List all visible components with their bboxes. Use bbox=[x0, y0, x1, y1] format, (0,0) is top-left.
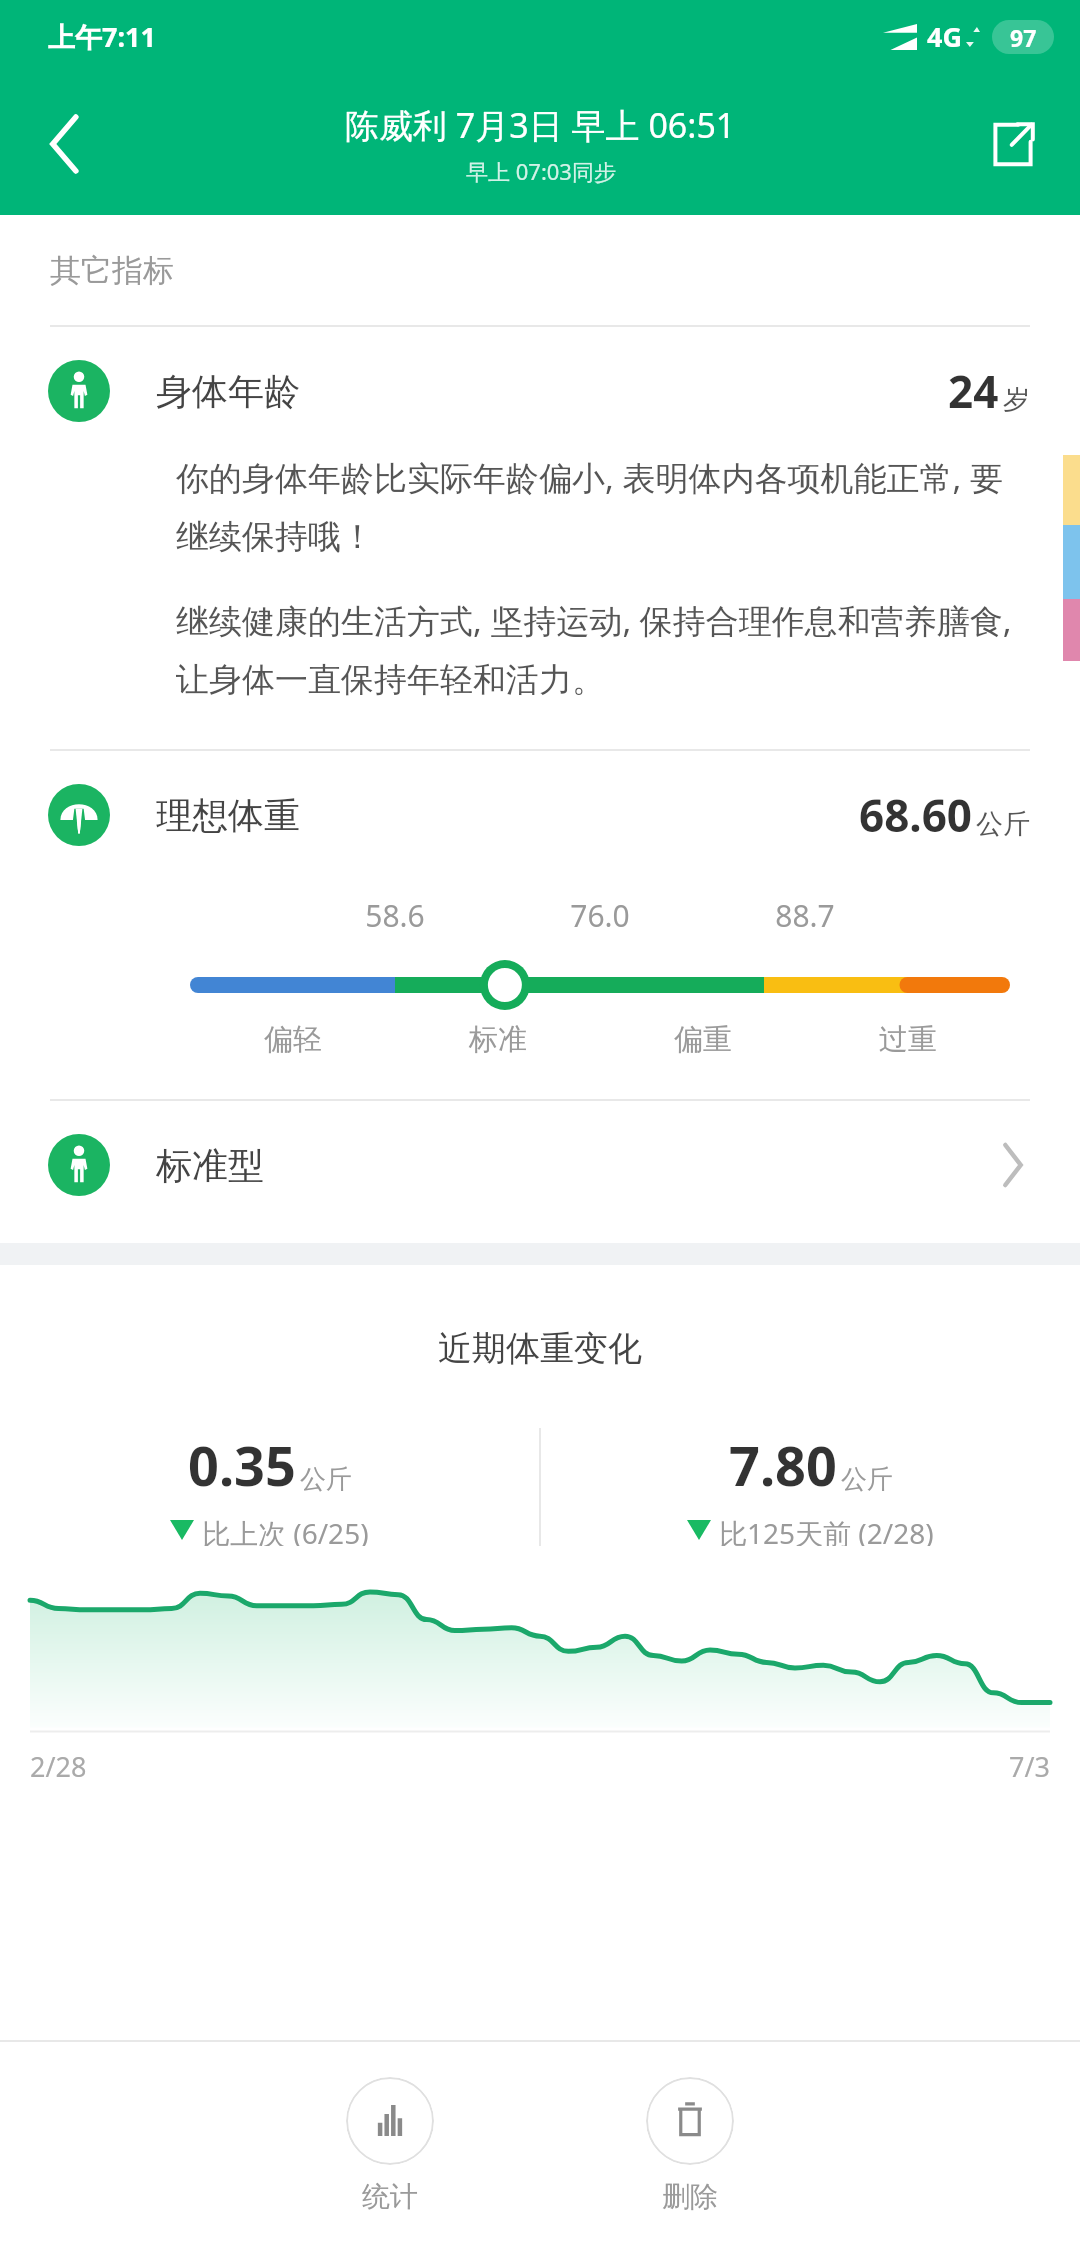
staticText: 陈威利 7月3日 早上 06:51 bbox=[345, 102, 736, 148]
staticText: 标准 bbox=[438, 1021, 558, 1058]
staticText: 其它指标 bbox=[50, 251, 174, 290]
staticText: 7.80 bbox=[729, 1428, 837, 1502]
staticText: 统计 bbox=[362, 2179, 418, 2214]
staticText: 标准型 bbox=[156, 1143, 264, 1188]
staticText: 比上次 (6/25) bbox=[202, 1514, 369, 1546]
button[interactable]: Share bbox=[968, 99, 1058, 189]
button[interactable]: 身体年龄 bbox=[0, 327, 1080, 455]
staticText: 公斤 bbox=[841, 1463, 893, 1496]
button[interactable]: 标准型 bbox=[0, 1101, 1080, 1229]
staticText: 97 bbox=[1010, 22, 1037, 53]
button[interactable]: Delete bbox=[610, 2077, 770, 2214]
staticText: 公斤 bbox=[976, 807, 1030, 841]
staticText: 近期体重变化 bbox=[0, 1327, 1080, 1370]
staticText: 过重 bbox=[848, 1021, 968, 1058]
staticText: 早上 07:03同步 bbox=[466, 156, 616, 186]
staticText: 4G bbox=[927, 18, 962, 55]
staticText: 公斤 bbox=[300, 1463, 352, 1496]
staticText: 你的身体年龄比实际年龄偏小, 表明体内各项机能正常, 要继续保持哦！ bbox=[176, 455, 1020, 558]
staticText: 58.6 bbox=[335, 895, 455, 936]
button[interactable]: 理想体重 bbox=[0, 751, 1080, 879]
button[interactable]: Back bbox=[20, 99, 110, 189]
staticText: 理想体重 bbox=[156, 793, 300, 838]
staticText: 比125天前 (2/28) bbox=[719, 1514, 934, 1546]
button[interactable]: Statistics bbox=[310, 2077, 470, 2214]
staticText: 88.7 bbox=[745, 895, 865, 936]
staticText: 偏轻 bbox=[233, 1021, 353, 1058]
staticText: 7/3 bbox=[1009, 1748, 1050, 1785]
staticText: 24 bbox=[948, 361, 999, 421]
staticText: 0.35 bbox=[188, 1428, 296, 1502]
staticText: 68.60 bbox=[859, 785, 973, 845]
staticText: 偏重 bbox=[643, 1021, 763, 1058]
staticText: 2/28 bbox=[30, 1748, 87, 1785]
staticText: 上午7:11 bbox=[48, 18, 156, 55]
staticText: 76.0 bbox=[540, 895, 660, 936]
staticText: 岁 bbox=[1003, 383, 1030, 417]
staticText: 身体年龄 bbox=[156, 369, 300, 414]
staticText: 删除 bbox=[662, 2179, 718, 2214]
staticText: 继续健康的生活方式, 坚持运动, 保持合理作息和营养膳食, 让身体一直保持年轻和… bbox=[176, 598, 1020, 701]
